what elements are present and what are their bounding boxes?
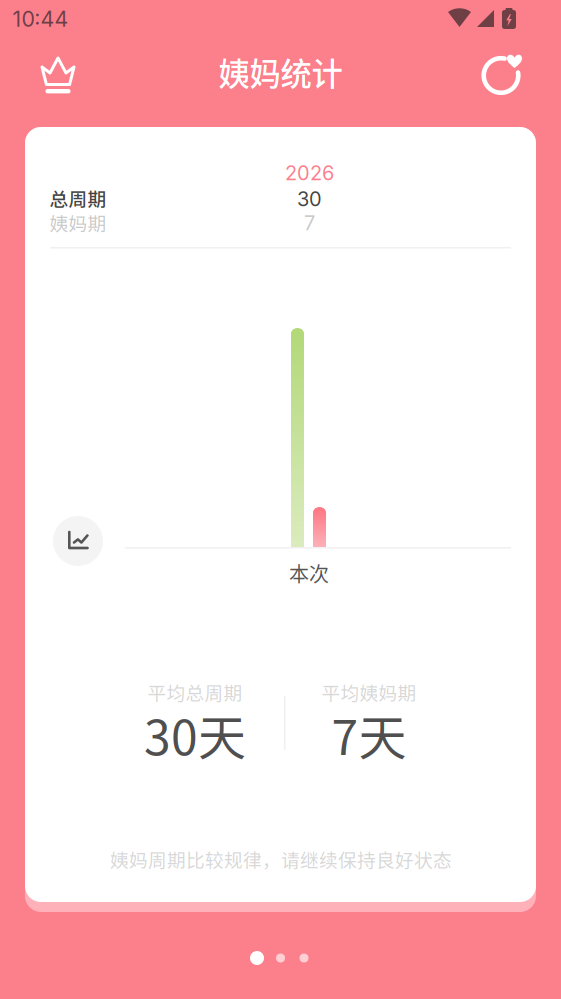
staticText: 平均总周期	[147, 678, 242, 705]
button[interactable]: 会员	[29, 46, 88, 104]
staticText: 姨妈统计	[218, 49, 342, 95]
staticText: 姨妈周期比较规律，请继续保持良好状态	[110, 845, 452, 872]
staticText: 10:44	[12, 6, 68, 32]
staticText: 7	[304, 211, 315, 235]
button[interactable]: 周期记录	[472, 46, 531, 104]
staticText: 2026	[285, 161, 334, 185]
staticText: 7天	[331, 699, 406, 769]
staticText: 平均姨妈期	[321, 678, 416, 705]
staticText: 姨妈期	[49, 209, 106, 236]
staticText: 30	[297, 187, 322, 211]
staticText: 总周期	[49, 184, 106, 211]
staticText: 本次	[289, 558, 329, 587]
staticText: 30天	[144, 699, 246, 769]
